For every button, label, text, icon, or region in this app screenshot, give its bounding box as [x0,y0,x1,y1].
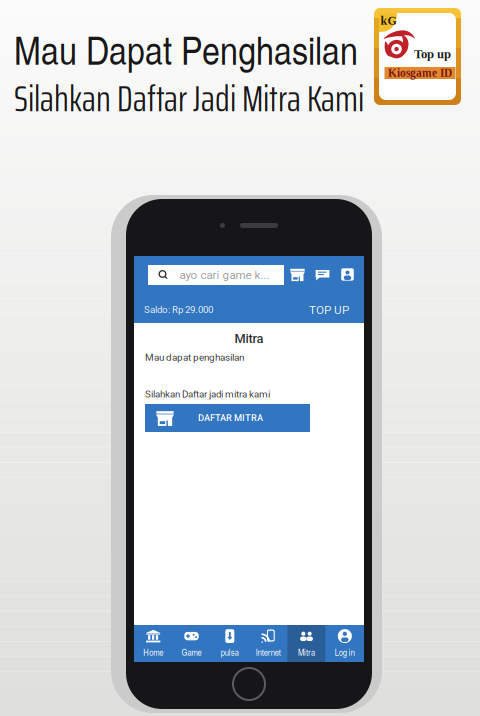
staticText: Top up [414,47,451,61]
button[interactable]: Game [172,625,211,662]
staticText: Saldo: Rp 29.000 [144,304,213,315]
staticText: Log in [335,646,355,658]
staticText: DAFTAR MITRA [198,412,263,423]
staticText: Mau Dapat Penghasilan [14,22,358,76]
staticText: Home [143,646,163,658]
staticText: Silahkan Daftar jadi mitra kami [145,388,270,400]
button[interactable]: DAFTAR MITRA [145,404,310,432]
button[interactable]: Account [340,267,355,282]
button[interactable]: TOP UP [309,304,349,316]
button[interactable]: Log in [326,625,364,662]
staticText: Kiosgame ID [388,67,452,79]
staticText: ayo cari game k... [179,268,269,282]
staticText: Silahkan Daftar Jadi Mitra Kami [14,69,364,128]
staticText: Mau dapat penghasilan [145,351,244,363]
staticText: pulsa [221,646,239,658]
staticText: Internet [256,646,281,658]
button[interactable]: Messages [315,267,330,282]
button[interactable]: Internet [249,625,287,662]
staticText: kG [380,14,396,27]
button[interactable]: pulsa [211,625,249,662]
button[interactable]: Home [134,625,172,662]
staticText: TOP UP [309,303,349,317]
button[interactable]: Mitra [287,625,326,662]
staticText: Mitra [234,331,263,346]
staticText: Game [181,646,201,658]
button[interactable]: Store [290,267,305,282]
staticText: Mitra [298,646,315,658]
